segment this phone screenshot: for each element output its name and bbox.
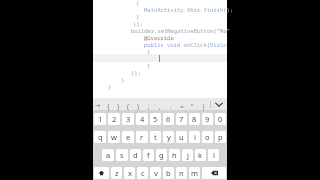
staticText: 3 <box>126 114 131 124</box>
staticText: w <box>111 132 117 142</box>
staticText: r <box>140 132 144 142</box>
button[interactable]: , <box>154 98 165 110</box>
staticText: t <box>154 132 157 142</box>
staticText: l <box>213 150 215 160</box>
button[interactable]: m <box>189 167 200 179</box>
button[interactable]: { <box>103 98 113 110</box>
button[interactable]: ) <box>133 98 143 110</box>
staticText: v <box>154 168 158 178</box>
button[interactable]: z <box>111 167 122 179</box>
button[interactable]: 8 <box>189 113 200 125</box>
staticText: p <box>218 132 223 142</box>
button[interactable]: w <box>108 131 120 143</box>
button[interactable]: 9 <box>202 113 213 125</box>
staticText: { <box>147 48 151 55</box>
staticText: u <box>179 132 184 142</box>
button[interactable]: 3 <box>122 113 134 125</box>
button[interactable]: t <box>150 131 161 143</box>
button[interactable]: q <box>94 131 106 143</box>
staticText: 0 <box>218 114 223 124</box>
button[interactable]: | <box>198 98 209 110</box>
button[interactable]: p <box>215 131 226 143</box>
button[interactable]: ; <box>143 98 154 110</box>
button[interactable]: = <box>176 98 187 110</box>
staticText: b <box>166 168 171 178</box>
button[interactable]: e <box>122 131 134 143</box>
button[interactable]: v <box>150 167 161 179</box>
button[interactable]: 6 <box>163 113 174 125</box>
button[interactable]: b <box>163 167 174 179</box>
staticText: 2 <box>112 114 117 124</box>
button[interactable]: l <box>208 149 219 161</box>
staticText: 9 <box>205 114 210 124</box>
button[interactable]: 1 <box>94 113 106 125</box>
staticText: s <box>120 150 124 160</box>
button[interactable]: i <box>189 131 200 143</box>
staticText: 6 <box>166 114 171 124</box>
staticText: . <box>170 102 172 111</box>
staticText: c <box>141 168 145 178</box>
button[interactable]: 2 <box>108 113 120 125</box>
button[interactable]: d <box>130 149 141 161</box>
staticText: o <box>205 132 210 142</box>
staticText: }); <box>131 69 141 76</box>
staticText: → <box>95 102 101 110</box>
button[interactable]: 5 <box>150 113 161 125</box>
staticText: m <box>191 168 199 178</box>
button[interactable]: h <box>169 149 180 161</box>
staticText: }); <box>133 20 143 27</box>
staticText: } <box>147 62 151 69</box>
button[interactable]: ( <box>123 98 133 110</box>
staticText: { <box>107 102 110 111</box>
button[interactable]: k <box>195 149 206 161</box>
staticText: y <box>167 132 171 142</box>
button[interactable]: a <box>102 149 114 161</box>
button[interactable]: Hide keyboard <box>211 98 227 110</box>
button[interactable]: u <box>176 131 187 143</box>
staticText: q <box>98 132 103 142</box>
staticText: } <box>121 76 125 83</box>
button[interactable]: 4 <box>136 113 148 125</box>
button[interactable]: . <box>165 98 176 110</box>
button[interactable]: 7 <box>176 113 187 125</box>
button[interactable]: r <box>136 131 148 143</box>
button[interactable]: o <box>202 131 213 143</box>
staticText: ; <box>148 102 150 111</box>
staticText: } <box>117 102 120 111</box>
button[interactable]: c <box>137 167 148 179</box>
staticText: " <box>191 102 194 111</box>
button[interactable]: " <box>187 98 198 110</box>
button[interactable]: 0 <box>215 113 226 125</box>
staticText: 1 <box>98 114 103 124</box>
staticText: d <box>133 150 138 160</box>
button[interactable]: x <box>124 167 135 179</box>
staticText: a <box>106 150 111 160</box>
staticText: builder.setNegativeButton("No" <box>131 27 231 34</box>
staticText: k <box>198 150 203 160</box>
button[interactable]: → <box>93 98 103 110</box>
button[interactable]: n <box>176 167 187 179</box>
button[interactable]: j <box>182 149 193 161</box>
staticText: h <box>172 150 177 160</box>
staticText: 4 <box>140 114 145 124</box>
button[interactable]: } <box>113 98 123 110</box>
staticText: g <box>159 150 164 160</box>
staticText: 7 <box>179 114 184 124</box>
staticText: { <box>136 0 140 6</box>
staticText: public void onClick(Dialo <box>144 41 227 48</box>
staticText: z <box>115 168 119 178</box>
staticText: i <box>194 132 196 142</box>
button[interactable]: f <box>143 149 154 161</box>
staticText: j <box>187 150 189 160</box>
staticText: 5 <box>153 114 158 124</box>
button[interactable]: s <box>116 149 128 161</box>
staticText: = <box>180 102 184 111</box>
button[interactable]: Shift <box>94 167 109 179</box>
button[interactable]: Backspace <box>202 167 226 179</box>
button[interactable]: g <box>156 149 167 161</box>
staticText: f <box>147 150 150 160</box>
button[interactable]: y <box>163 131 174 143</box>
staticText: | <box>202 102 206 111</box>
staticText: , <box>159 102 161 111</box>
staticText: x <box>128 168 132 178</box>
